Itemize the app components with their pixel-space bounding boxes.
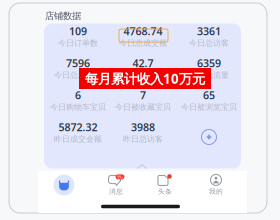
staticText: 7: [140, 88, 146, 102]
staticText: 3988: [131, 120, 155, 134]
staticText: 65: [203, 88, 215, 102]
staticText: 99+: [117, 174, 123, 179]
button[interactable]: 头条: [157, 174, 173, 196]
staticText: 4768.74: [123, 24, 162, 38]
staticText: 今日总浏览量: [54, 70, 102, 80]
staticText: 今日支付转化: [119, 70, 167, 80]
button[interactable]: 99+: [107, 174, 124, 196]
staticText: 今日订单数: [58, 38, 98, 48]
staticText: 昨日成交金额: [54, 134, 102, 144]
button[interactable]: 每月累计收入10万元: [79, 68, 211, 89]
staticText: 每月累计收入10万元: [85, 70, 205, 87]
staticText: 今日被浏览宝贝: [181, 102, 237, 112]
staticText: 42.7: [132, 56, 153, 70]
staticText: 昨日总访客: [123, 134, 163, 144]
staticText: 今日被收藏宝贝: [115, 102, 171, 112]
staticText: 6: [75, 88, 81, 102]
button[interactable]: 首页: [51, 172, 77, 198]
staticText: 6359: [197, 56, 221, 70]
staticText: 109: [69, 24, 87, 38]
staticText: 我的: [209, 187, 223, 196]
button[interactable]: 更多数据: [198, 126, 220, 148]
staticText: 今日总流量: [189, 70, 229, 80]
staticText: 7596: [66, 56, 90, 70]
staticText: 5872.32: [58, 120, 97, 134]
staticText: 3361: [197, 24, 221, 38]
staticText: 消息: [109, 187, 123, 196]
staticText: 店铺数据: [45, 10, 81, 22]
staticText: 今日总成交额: [119, 38, 167, 48]
staticText: 今日购物车宝贝: [50, 102, 106, 112]
button[interactable]: 我的: [208, 174, 224, 196]
staticText: 今日总访客: [189, 38, 229, 48]
staticText: 头条: [158, 187, 172, 196]
